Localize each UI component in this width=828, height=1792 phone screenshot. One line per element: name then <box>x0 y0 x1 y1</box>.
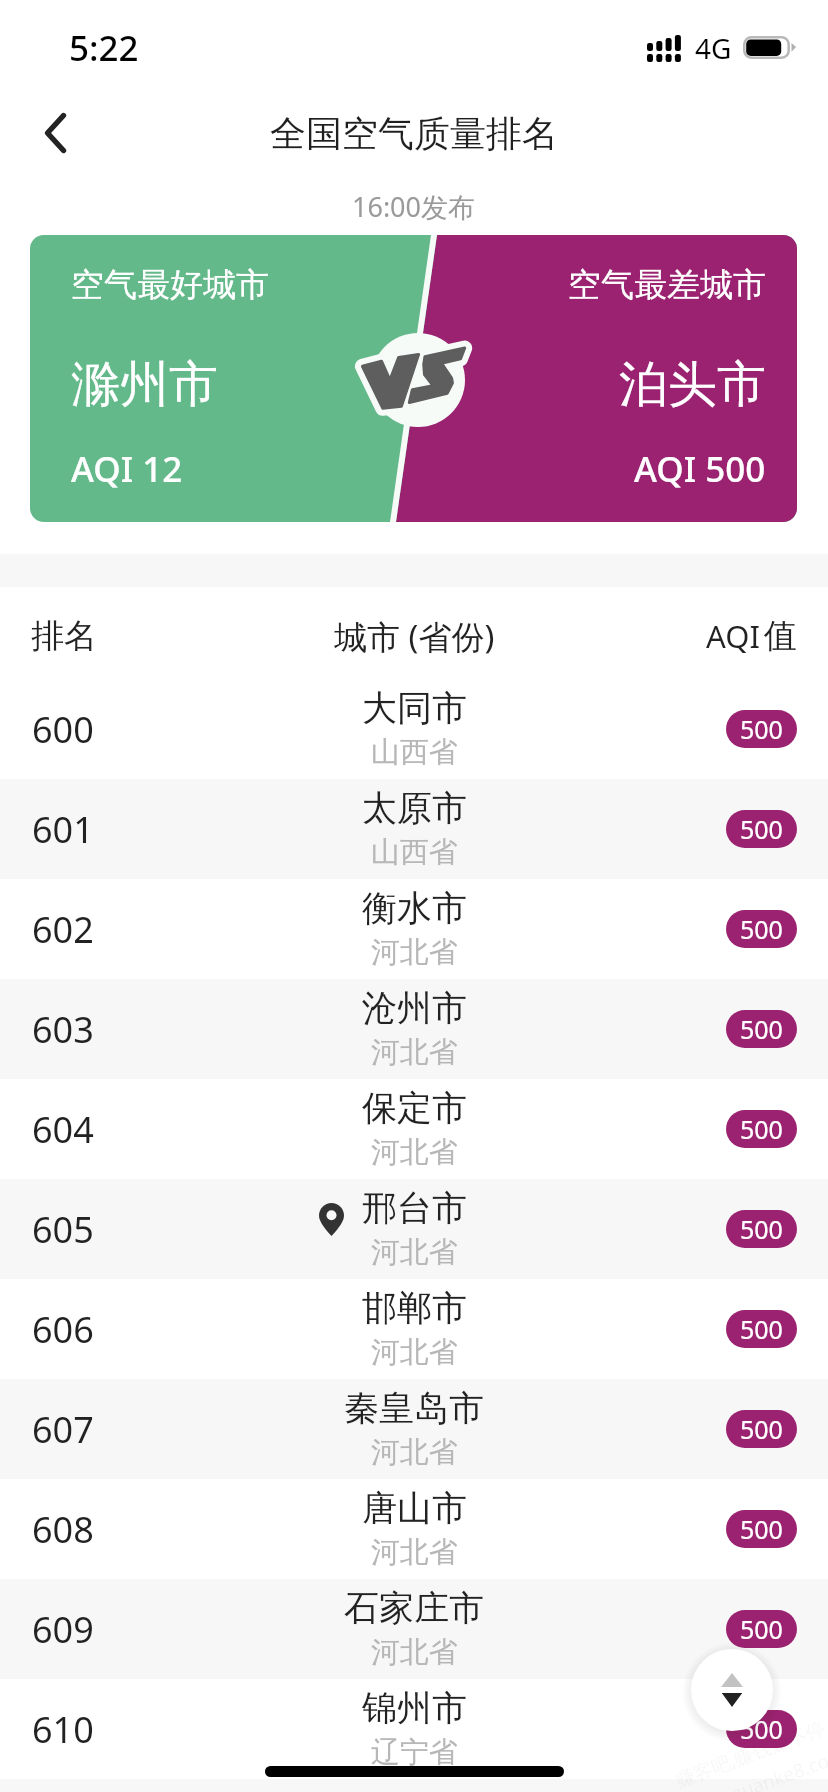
staticText: 603 <box>32 1005 94 1054</box>
staticText: 河北省 <box>371 934 458 971</box>
button[interactable]: 603 <box>0 979 828 1079</box>
button[interactable]: 602 <box>0 879 828 979</box>
staticText: 608 <box>32 1505 94 1554</box>
staticText: 沧州市 <box>362 986 467 1030</box>
staticText: 值 <box>764 615 797 657</box>
staticText: AQI <box>706 615 760 657</box>
staticText: 500 <box>740 1012 783 1046</box>
staticText: 500 <box>740 912 783 946</box>
staticText: 空气最差城市 <box>568 264 766 306</box>
staticText: 邢台市 <box>362 1186 467 1230</box>
staticText: 600 <box>32 705 94 754</box>
staticText: 500 <box>740 1412 783 1446</box>
staticText: 500 <box>740 1512 783 1546</box>
staticText: 606 <box>32 1305 94 1354</box>
button[interactable]: 607 <box>0 1379 828 1479</box>
staticText: 4G <box>695 29 732 67</box>
button[interactable]: Back <box>15 93 95 173</box>
staticText: AQI 12 <box>71 445 183 493</box>
staticText: 602 <box>32 905 94 954</box>
staticText: www.zuanke8.com <box>683 1741 828 1792</box>
button[interactable]: 609 <box>0 1579 828 1679</box>
staticText: 河北省 <box>371 1634 458 1671</box>
staticText: 山西省 <box>371 734 458 771</box>
staticText: 500 <box>740 1112 783 1146</box>
staticText: 607 <box>32 1405 94 1454</box>
button[interactable]: 605 <box>0 1179 828 1279</box>
staticText: 610 <box>32 1705 94 1754</box>
staticText: AQI 500 <box>634 445 766 493</box>
button[interactable]: 608 <box>0 1479 828 1579</box>
staticText: 辽宁省 <box>371 1734 458 1771</box>
staticText: 空气最好城市 <box>71 264 269 306</box>
staticText: 河北省 <box>371 1334 458 1371</box>
button[interactable]: 606 <box>0 1279 828 1379</box>
staticText: 滁州市 <box>71 354 218 416</box>
button[interactable]: Scroll to top or bottom <box>691 1649 773 1731</box>
staticText: 500 <box>740 712 783 746</box>
staticText: 衡水市 <box>362 886 467 930</box>
button[interactable]: 600 <box>0 679 828 779</box>
staticText: 500 <box>740 1312 783 1346</box>
staticText: 605 <box>32 1205 94 1254</box>
staticText: 泊头市 <box>619 354 766 416</box>
staticText: 山西省 <box>371 834 458 871</box>
button[interactable]: 601 <box>0 779 828 879</box>
staticText: 太原市 <box>362 786 467 830</box>
staticText: 16:00发布 <box>352 188 476 225</box>
staticText: 609 <box>32 1605 94 1654</box>
button[interactable]: 空气最好城市 <box>30 235 797 522</box>
staticText: 601 <box>32 805 94 854</box>
staticText: 604 <box>32 1105 94 1154</box>
staticText: 500 <box>740 1212 783 1246</box>
button[interactable]: 604 <box>0 1079 828 1179</box>
staticText: 500 <box>740 812 783 846</box>
staticText: 唐山市 <box>362 1486 467 1530</box>
staticText: 大同市 <box>362 686 467 730</box>
staticText: 河北省 <box>371 1134 458 1171</box>
staticText: 500 <box>740 1612 783 1646</box>
staticText: 保定市 <box>362 1086 467 1130</box>
button[interactable]: 610 <box>0 1679 828 1779</box>
staticText: 河北省 <box>371 1434 458 1471</box>
staticText: 全国空气质量排名 <box>270 111 558 156</box>
staticText: 赚客吧,赚钱赚不停！ <box>672 1708 828 1792</box>
staticText: 河北省 <box>371 1534 458 1571</box>
staticText: 500 <box>740 1712 783 1746</box>
staticText: 河北省 <box>371 1034 458 1071</box>
staticText: 5:22 <box>69 24 139 72</box>
staticText: 锦州市 <box>362 1686 467 1730</box>
staticText: 河北省 <box>371 1234 458 1271</box>
staticText: 城市 (省份) <box>334 614 495 659</box>
staticText: 秦皇岛市 <box>344 1386 484 1430</box>
staticText: 邯郸市 <box>362 1286 467 1330</box>
staticText: 排名 <box>31 615 97 657</box>
staticText: 石家庄市 <box>344 1586 484 1630</box>
